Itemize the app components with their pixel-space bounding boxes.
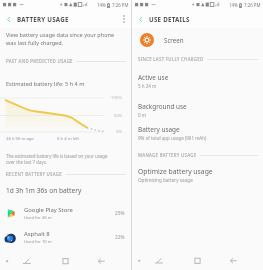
staticText: USE DETAILS	[149, 15, 190, 23]
staticText: RECENT BATTERY USAGE	[6, 171, 62, 177]
staticText: Asphalt 8	[24, 230, 50, 238]
button[interactable]: Back	[230, 248, 263, 270]
staticText: 5 h 4 m left	[57, 136, 80, 142]
button[interactable]: Recents	[32, 249, 65, 270]
staticText: Background use	[138, 102, 187, 111]
staticText: Active use	[138, 73, 169, 82]
staticText: Screen	[164, 36, 184, 44]
button[interactable]: More options	[117, 12, 131, 26]
staticText: Optimize battery usage	[138, 167, 213, 176]
staticText: PAST AND PREDICTED USAGE	[6, 58, 73, 64]
button[interactable]: Home	[65, 249, 98, 270]
staticText: BATTERY USAGE	[17, 15, 69, 23]
staticText: 7:26 PM	[112, 2, 129, 8]
staticText: Google Play Store	[24, 206, 73, 214]
staticText: 100%	[111, 95, 122, 101]
button[interactable]: Notifications	[132, 248, 164, 270]
staticText: 1d 3h 1m 36s on battery	[6, 186, 82, 195]
button[interactable]: Back	[98, 249, 131, 270]
staticText: 5 h 24 m	[138, 83, 157, 89]
button[interactable]: Navigate up	[133, 12, 147, 26]
staticText: Estimated battery life: 5 h 4 m	[6, 80, 85, 88]
staticText: 14%	[229, 2, 238, 8]
staticText: Battery usage	[138, 125, 180, 134]
staticText: 25%	[115, 210, 125, 217]
button[interactable]: Navigate up	[1, 12, 15, 26]
staticText: 7:26 PM	[244, 2, 261, 8]
button[interactable]: Screen	[132, 28, 263, 52]
staticText: MANAGE BATTERY USAGE	[138, 152, 197, 158]
staticText: 9% of total app usage (961 mAh)	[138, 135, 207, 141]
staticText: 50%	[114, 113, 123, 119]
button[interactable]: Home	[197, 248, 230, 270]
staticText: Optimizing battery usage	[138, 177, 193, 183]
staticText: View battery usage data since your phone…	[6, 31, 114, 47]
staticText: SINCE LAST FULLY CHARGED	[138, 56, 204, 62]
button[interactable]: Google Play Store	[0, 201, 131, 225]
button[interactable]: Notifications	[0, 249, 32, 270]
staticText: 14%	[97, 2, 106, 8]
staticText: Used for 10 m	[24, 239, 52, 245]
button[interactable]: Asphalt 8	[0, 225, 131, 249]
staticText: The estimated battery life is based on y…	[6, 153, 108, 165]
staticText: 22%	[115, 234, 125, 241]
button[interactable]: Optimize battery usage	[132, 167, 263, 183]
staticText: 0%	[116, 129, 122, 135]
button[interactable]: Recents	[164, 248, 197, 270]
staticText: 0 m	[138, 112, 146, 118]
staticText: 26 h 56 m ago	[6, 136, 34, 142]
staticText: Used for 26 m	[24, 215, 52, 221]
